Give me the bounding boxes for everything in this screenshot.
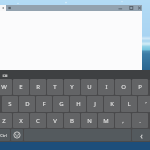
staticText: Ctrl (0, 133, 7, 138)
button[interactable]: W (0, 79, 12, 95)
button[interactable]: C (30, 113, 46, 128)
staticText: R (36, 83, 40, 91)
button[interactable]: I (98, 79, 114, 95)
staticText: M (103, 117, 109, 125)
staticText: D (25, 100, 30, 108)
staticText: I (105, 83, 108, 91)
staticText: Y (70, 83, 74, 91)
button[interactable]: E (13, 79, 29, 95)
button[interactable]: L (121, 96, 137, 112)
button[interactable]: O (115, 79, 131, 95)
button[interactable]: V (47, 113, 63, 128)
button[interactable]: H (70, 96, 86, 112)
button[interactable]: G (53, 96, 69, 112)
staticText: E (19, 83, 23, 91)
staticText: O (121, 83, 126, 91)
staticText: C (36, 117, 40, 125)
button[interactable]: ’ (138, 96, 150, 112)
staticText: H (76, 100, 81, 108)
staticText: B (70, 117, 74, 125)
staticText: . (139, 117, 141, 125)
staticText: T (53, 83, 57, 91)
button[interactable]: X (13, 113, 29, 128)
button[interactable]: Z (0, 113, 12, 128)
staticText: , (122, 117, 124, 125)
staticText: X (19, 117, 23, 125)
button[interactable]: ‹ (132, 129, 150, 141)
button[interactable]: Y (64, 79, 80, 95)
staticText: S (8, 100, 12, 108)
button[interactable]: B (64, 113, 80, 128)
button[interactable]: U (81, 79, 97, 95)
button[interactable]: Emoji (11, 129, 23, 141)
staticText: G (59, 100, 64, 108)
button[interactable]: N (81, 113, 97, 128)
button[interactable]: J (87, 96, 103, 112)
button[interactable]: F (36, 96, 52, 112)
button[interactable]: K (104, 96, 120, 112)
staticText: K (110, 100, 114, 108)
button[interactable]: , (115, 113, 131, 128)
staticText: Z (2, 117, 6, 125)
button[interactable]: T (47, 79, 63, 95)
staticText: L (127, 100, 131, 108)
staticText: N (87, 117, 92, 125)
staticText: W (1, 83, 7, 91)
staticText: ’ (145, 100, 147, 108)
staticText: P (138, 83, 142, 91)
staticText: ‹ (140, 130, 143, 141)
button[interactable]: M (98, 113, 114, 128)
button[interactable]: R (30, 79, 46, 95)
button[interactable]: Keyboard settings (2, 73, 8, 78)
button[interactable]: . (132, 113, 148, 128)
staticText: F (42, 100, 46, 108)
button[interactable]: P (132, 79, 148, 95)
button[interactable]: D (19, 96, 35, 112)
button[interactable]: Tab (0, 5, 6, 11)
staticText: U (87, 83, 92, 91)
staticText: J (94, 100, 96, 108)
staticText: V (53, 117, 57, 125)
button[interactable]: Ctrl (0, 129, 10, 141)
button[interactable]: S (2, 96, 18, 112)
